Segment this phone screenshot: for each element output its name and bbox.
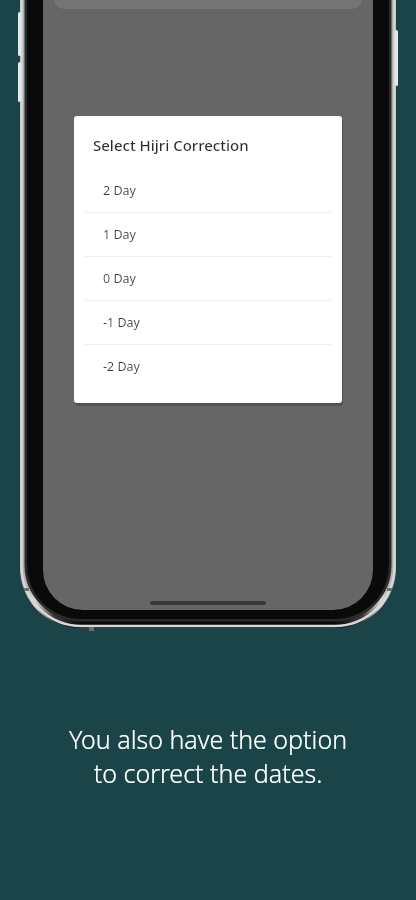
staticText: 0 Day xyxy=(103,270,136,287)
button[interactable]: -1 Day xyxy=(74,301,342,344)
staticText: Select Hijri Correction xyxy=(93,135,249,155)
staticText: -2 Day xyxy=(103,358,140,375)
button[interactable]: -2 Day xyxy=(74,345,342,388)
staticText: -1 Day xyxy=(103,314,140,331)
staticText: 1 Day xyxy=(103,226,136,243)
button[interactable]: 0 Day xyxy=(74,257,342,300)
staticText: You also have the option to correct the … xyxy=(30,722,386,790)
button[interactable]: 1 Day xyxy=(74,213,342,256)
button[interactable]: 2 Day xyxy=(74,168,342,212)
staticText: 2 Day xyxy=(103,182,136,199)
